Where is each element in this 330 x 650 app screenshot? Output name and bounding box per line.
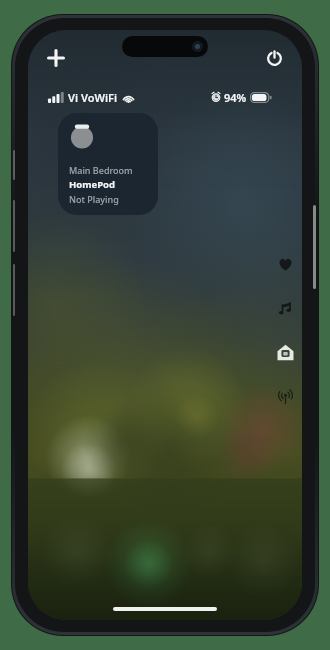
button[interactable]: Broadcast [270, 384, 300, 408]
button[interactable]: Power options [254, 38, 294, 78]
staticText: HomePod [69, 178, 115, 191]
button[interactable]: Music [270, 296, 300, 320]
button[interactable]: Main Bedroom [58, 113, 158, 215]
staticText: 94% [224, 90, 247, 104]
button[interactable]: Add accessory or scene [36, 38, 76, 78]
button[interactable]: Home [270, 340, 300, 364]
staticText: Vi VoWiFi [68, 90, 118, 104]
button[interactable]: Favorites [270, 252, 300, 276]
staticText: Not Playing [69, 193, 119, 205]
staticText: Main Bedroom [69, 164, 133, 176]
